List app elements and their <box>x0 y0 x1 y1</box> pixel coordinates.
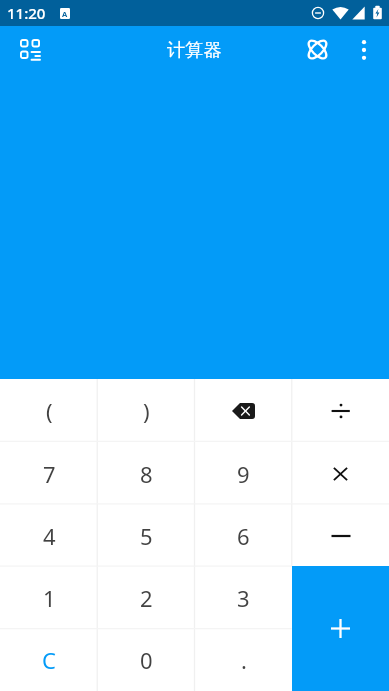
staticText: . <box>241 645 247 675</box>
staticText: 9 <box>237 459 250 489</box>
button[interactable]: ( <box>0 379 98 442</box>
staticText: 计算器 <box>167 38 222 61</box>
staticText: 5 <box>140 521 153 551</box>
button[interactable]: Multiply <box>292 442 389 505</box>
staticText: 2 <box>140 583 153 613</box>
button[interactable]: 9 <box>195 442 292 505</box>
button[interactable]: Backspace <box>195 379 292 442</box>
button[interactable]: Apps <box>7 26 52 71</box>
button[interactable]: Minus <box>292 505 389 567</box>
staticText: 0 <box>140 645 153 675</box>
staticText: 3 <box>237 583 250 613</box>
button[interactable]: 3 <box>195 567 292 629</box>
button[interactable]: . <box>195 629 292 691</box>
staticText: ) <box>143 396 150 426</box>
button[interactable]: 0 <box>98 629 195 691</box>
staticText: 6 <box>237 521 250 551</box>
button[interactable]: 7 <box>0 442 98 505</box>
staticText: 4 <box>43 521 56 551</box>
button[interactable]: 1 <box>0 567 98 629</box>
staticText: 7 <box>43 459 56 489</box>
button[interactable]: ) <box>98 379 195 442</box>
button[interactable]: Plus <box>292 566 389 691</box>
button[interactable]: 5 <box>98 505 195 567</box>
button[interactable]: 6 <box>195 505 292 567</box>
staticText: 11:20 <box>7 3 46 23</box>
staticText: ( <box>46 396 53 426</box>
staticText: A <box>62 9 68 19</box>
staticText: 1 <box>43 583 56 613</box>
button[interactable]: 2 <box>98 567 195 629</box>
button[interactable]: 4 <box>0 505 98 567</box>
button[interactable]: Scientific mode <box>295 27 340 72</box>
button[interactable]: C <box>0 629 98 691</box>
button[interactable]: Divide <box>292 379 389 442</box>
button[interactable]: More options <box>341 27 386 72</box>
staticText: 8 <box>140 459 153 489</box>
button[interactable]: 8 <box>98 442 195 505</box>
staticText: C <box>42 645 56 675</box>
